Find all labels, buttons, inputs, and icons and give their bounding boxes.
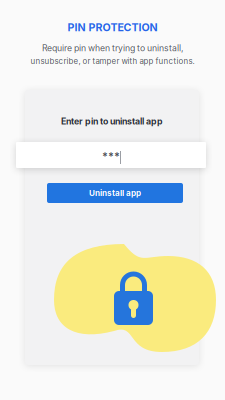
staticText: Require pin when trying to uninstall, — [42, 43, 183, 53]
staticText: Enter pin to uninstall app — [61, 116, 163, 127]
staticText: Uninstall app — [89, 188, 141, 198]
button[interactable]: Uninstall app — [47, 183, 183, 203]
staticText: PIN PROTECTION — [67, 21, 157, 34]
staticText: *** — [102, 150, 120, 163]
staticText: unsubscribe, or tamper with app function… — [30, 56, 194, 66]
